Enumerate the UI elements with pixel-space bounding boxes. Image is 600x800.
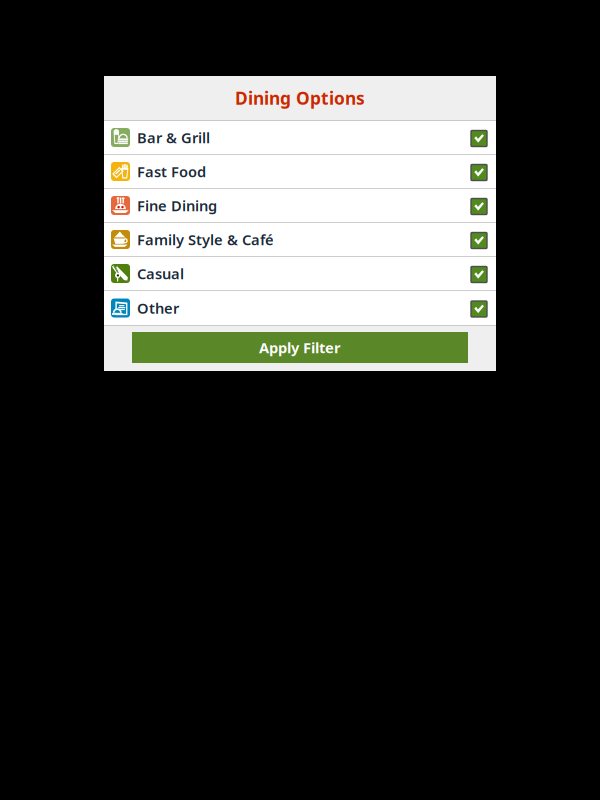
staticText: Other <box>137 298 179 318</box>
staticText: Apply Filter <box>259 338 341 357</box>
button[interactable]: Fine Dining <box>104 189 496 223</box>
staticText: Dining Options <box>235 86 365 109</box>
button[interactable]: Other <box>104 291 496 325</box>
staticText: Fine Dining <box>137 196 217 215</box>
button[interactable]: Apply Filter <box>132 332 468 363</box>
button[interactable]: Family Style & Café <box>104 223 496 257</box>
staticText: Casual <box>137 264 184 283</box>
staticText: Bar & Grill <box>137 128 210 147</box>
staticText: Fast Food <box>137 162 206 181</box>
button[interactable]: Casual <box>104 257 496 291</box>
button[interactable]: Fast Food <box>104 155 496 189</box>
staticText: Family Style & Café <box>137 230 274 249</box>
button[interactable]: Bar & Grill <box>104 121 496 155</box>
